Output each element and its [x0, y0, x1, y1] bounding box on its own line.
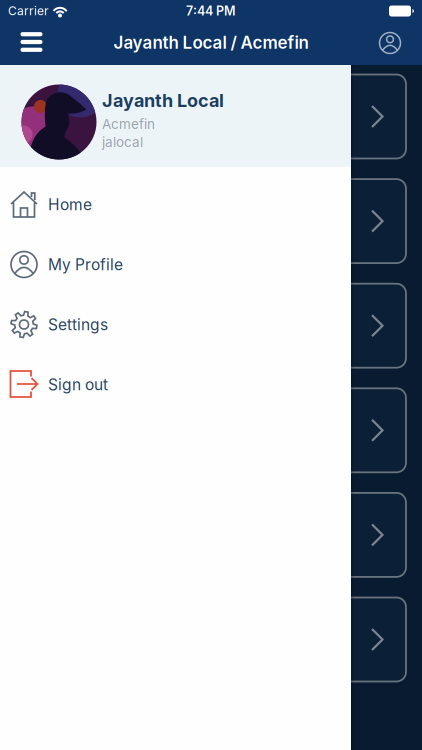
staticText: Jayanth Local [102, 90, 224, 111]
button[interactable]: Home [0, 174, 351, 234]
button[interactable]: Item 5 [16, 493, 406, 577]
staticText: My Profile [48, 255, 123, 274]
staticText: Sign out [48, 375, 108, 394]
button[interactable]: Sign out [0, 354, 351, 414]
button[interactable]: My Profile [0, 234, 351, 294]
staticText: Settings [48, 315, 108, 334]
staticText: jalocal [102, 134, 143, 150]
staticText: Acmefin [102, 116, 155, 132]
staticText: 7:44 PM [186, 3, 236, 18]
button[interactable]: Jayanth Local [0, 65, 351, 167]
button[interactable]: Menu [9, 22, 53, 62]
staticText: Carrier [8, 4, 49, 18]
staticText: Jayanth Local / Acmefin [113, 32, 308, 53]
button[interactable]: Item 2 [16, 179, 406, 263]
button[interactable]: Profile [372, 23, 408, 63]
button[interactable]: Item 1 [16, 74, 406, 158]
button[interactable]: Item 3 [16, 284, 406, 368]
staticText: Home [48, 195, 92, 214]
button[interactable]: Settings [0, 294, 351, 354]
button[interactable]: Item 6 [16, 597, 406, 681]
button[interactable]: Item 4 [16, 388, 406, 472]
